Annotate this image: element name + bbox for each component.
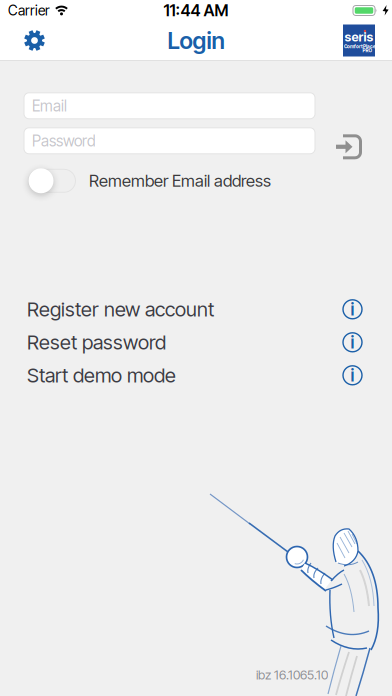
staticText: Reset password (27, 330, 166, 354)
staticText: i (350, 332, 354, 353)
staticText: 11:44 AM (163, 1, 228, 20)
staticText: i (350, 365, 354, 386)
staticText: Password (32, 131, 96, 150)
staticText: Register new account (27, 297, 214, 321)
staticText: seris (344, 29, 373, 45)
button[interactable]: Log in (336, 134, 362, 159)
button[interactable]: Reset password (0, 326, 392, 359)
staticText: Login (167, 26, 224, 55)
button[interactable]: Settings (24, 30, 45, 51)
button[interactable]: Start demo mode (0, 359, 392, 392)
staticText: i (350, 299, 354, 320)
button[interactable]: Register new account (0, 293, 392, 326)
staticText: Remember Email address (89, 171, 271, 191)
staticText: ComfortPlace (344, 44, 376, 49)
staticText: ibz 16.1065.10 (256, 667, 328, 683)
staticText: Email (32, 96, 67, 115)
staticText: PRO (362, 48, 372, 53)
staticText: Carrier (8, 2, 50, 19)
button[interactable]: Remember Email address (28, 168, 76, 194)
staticText: Start demo mode (27, 363, 176, 387)
